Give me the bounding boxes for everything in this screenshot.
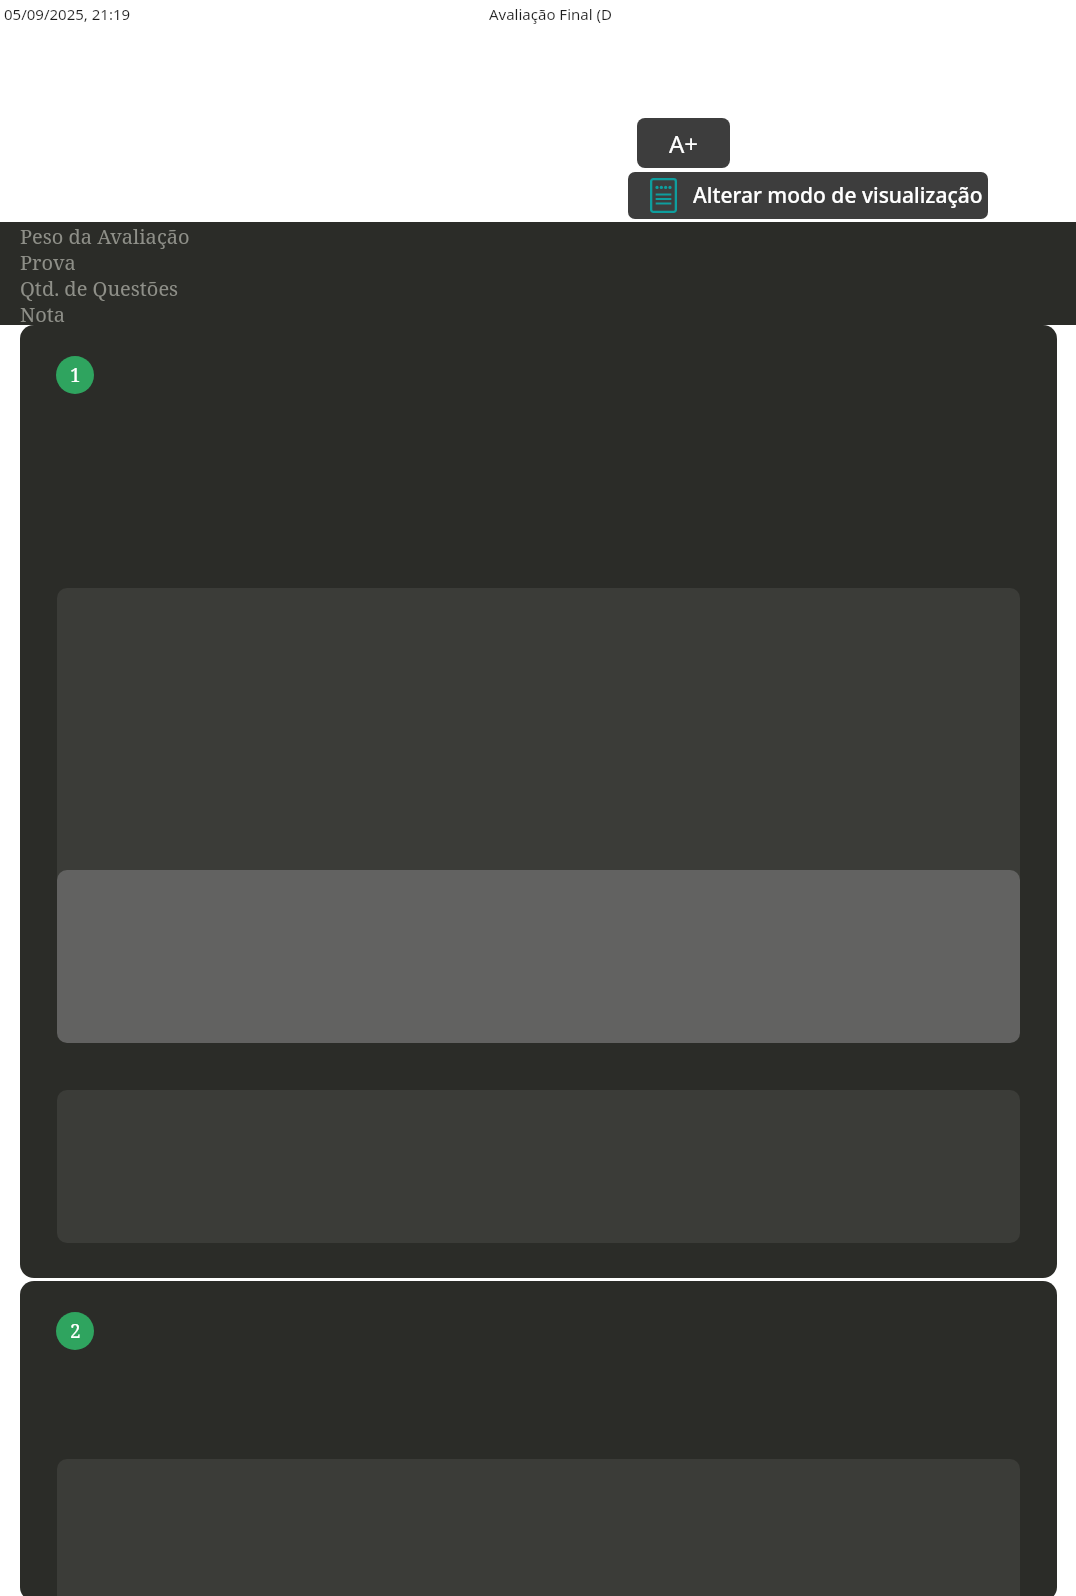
- staticText: 2: [70, 1318, 81, 1344]
- staticText: Avaliação Final (D: [489, 4, 612, 24]
- staticText: A+: [669, 127, 699, 160]
- staticText: 05/09/2025, 21:19: [4, 4, 131, 24]
- staticText: 1: [70, 362, 81, 388]
- staticText: Nota: [20, 301, 66, 325]
- staticText: Qtd. de Questões: [20, 275, 179, 301]
- button[interactable]: 1: [20, 325, 1057, 1278]
- staticText: Prova: [20, 249, 76, 275]
- staticText: Alterar modo de visualização: [693, 181, 983, 210]
- button[interactable]: Alterar modo de visualização: [628, 172, 988, 219]
- button[interactable]: Aumentar fonte: [637, 118, 730, 168]
- staticText: Peso da Avaliação: [20, 223, 190, 249]
- button[interactable]: 2: [20, 1281, 1057, 1596]
